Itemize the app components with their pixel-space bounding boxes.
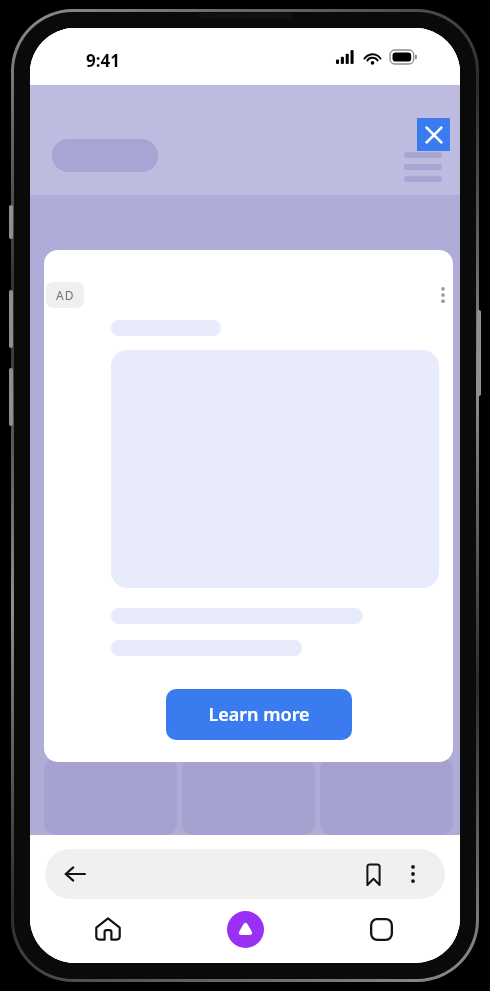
- button[interactable]: Learn more: [166, 689, 352, 740]
- button[interactable]: Close ad: [417, 118, 450, 151]
- button[interactable]: AD: [46, 282, 84, 308]
- staticText: 9:41: [86, 49, 120, 72]
- button[interactable]: Home: [84, 905, 132, 953]
- button[interactable]: Assistant: [221, 905, 269, 953]
- button[interactable]: Bookmark: [355, 856, 391, 892]
- staticText: Learn more: [208, 702, 310, 727]
- button[interactable]: More options: [395, 856, 431, 892]
- button[interactable]: Back: [57, 856, 93, 892]
- button[interactable]: Tabs: [357, 905, 405, 953]
- button[interactable]: More options: [430, 282, 453, 308]
- staticText: AD: [56, 287, 75, 303]
